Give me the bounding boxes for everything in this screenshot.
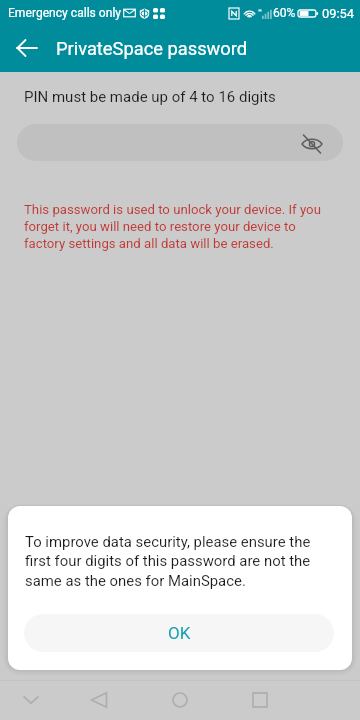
staticText: PrivateSpace password bbox=[56, 38, 248, 59]
staticText: This password is used to unlock your dev… bbox=[24, 202, 328, 251]
button[interactable]: Hide keyboard bbox=[5, 680, 57, 720]
staticText: 60% bbox=[273, 6, 296, 20]
staticText: To improve data security, please ensure … bbox=[25, 533, 335, 590]
staticText: 09:54 bbox=[322, 6, 355, 21]
button[interactable]: Recents bbox=[234, 680, 286, 720]
button[interactable]: Back bbox=[16, 37, 38, 59]
staticText: PIN must be made up of 4 to 16 digits bbox=[24, 88, 276, 106]
button[interactable]: OK bbox=[24, 614, 334, 652]
button[interactable]: Show password bbox=[17, 124, 343, 161]
staticText: OK bbox=[168, 623, 191, 643]
staticText: Emergency calls only bbox=[8, 6, 122, 20]
button[interactable]: Back bbox=[73, 680, 125, 720]
button[interactable]: Show password bbox=[300, 132, 324, 156]
button[interactable]: Home bbox=[154, 680, 206, 720]
